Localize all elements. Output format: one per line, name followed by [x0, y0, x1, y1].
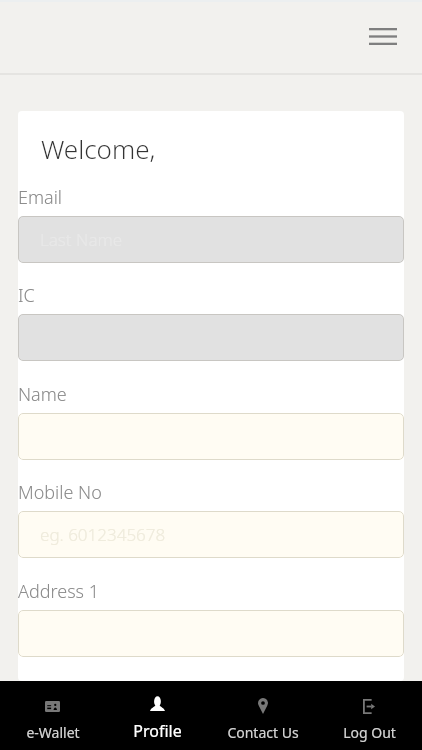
staticText: Profile: [133, 720, 182, 742]
button[interactable]: Log Out: [316, 681, 422, 750]
button[interactable]: [18, 413, 404, 460]
staticText: Welcome,: [41, 131, 156, 166]
button[interactable]: Contact Us: [210, 681, 316, 750]
button[interactable]: Profile: [105, 681, 210, 750]
staticText: Log Out: [343, 723, 396, 742]
staticText: Contact Us: [227, 723, 299, 742]
staticText: Mobile No: [18, 480, 102, 505]
button[interactable]: Last Name: [18, 216, 404, 263]
button[interactable]: Menu: [361, 14, 405, 58]
staticText: Address 1: [18, 579, 99, 604]
staticText: Name: [18, 382, 67, 407]
button[interactable]: [18, 610, 404, 657]
staticText: eg. 6012345678: [40, 523, 166, 546]
staticText: IC: [18, 283, 35, 308]
button[interactable]: [18, 314, 404, 361]
button[interactable]: e-Wallet: [0, 681, 105, 750]
staticText: e-Wallet: [26, 723, 80, 742]
staticText: Email: [18, 185, 63, 210]
button[interactable]: eg. 6012345678: [18, 511, 404, 558]
